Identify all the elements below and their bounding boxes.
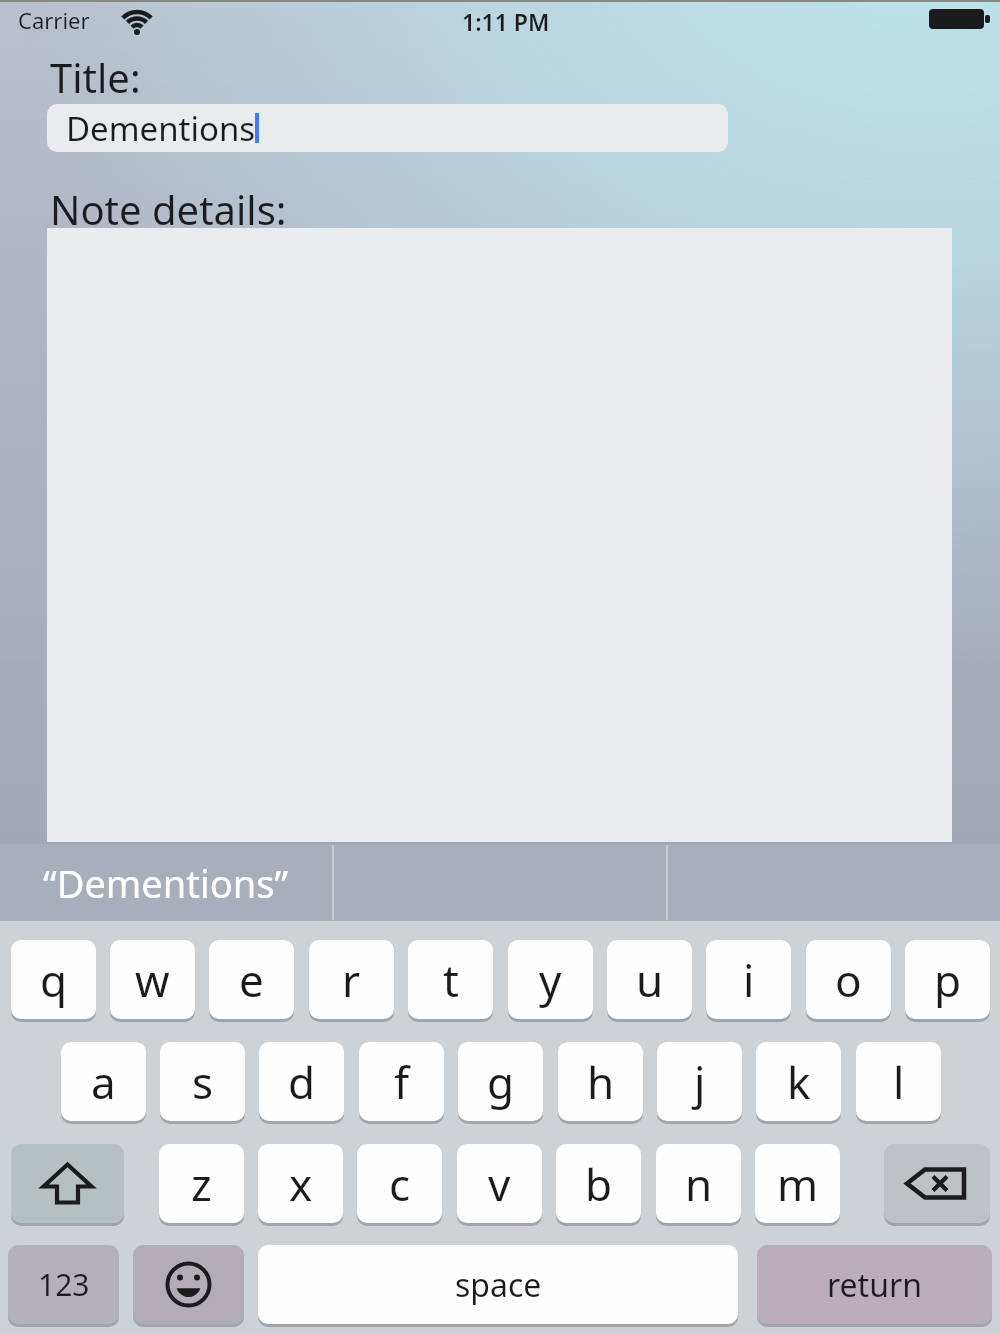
staticText: “Dementions”: [43, 857, 289, 909]
staticText: e: [239, 950, 264, 1010]
button[interactable]: h: [558, 1042, 643, 1121]
button[interactable]: g: [458, 1042, 543, 1121]
button[interactable]: r: [309, 940, 394, 1019]
button[interactable]: i: [706, 940, 791, 1019]
button[interactable]: Note details:: [50, 182, 410, 230]
staticText: y: [539, 950, 562, 1010]
button[interactable]: n: [656, 1144, 741, 1223]
staticText: i: [743, 950, 755, 1010]
button[interactable]: “Dementions”: [0, 844, 332, 921]
button[interactable]: o: [806, 940, 891, 1019]
button[interactable]: 1:11 PM: [406, 6, 606, 34]
button[interactable]: space: [258, 1245, 738, 1324]
staticText: l: [893, 1052, 905, 1112]
button[interactable]: [884, 1144, 990, 1223]
button[interactable]: z: [159, 1144, 244, 1223]
staticText: 1:11 PM: [462, 6, 550, 34]
button[interactable]: [133, 1245, 244, 1324]
staticText: 123: [38, 1264, 90, 1305]
staticText: s: [192, 1052, 214, 1112]
button[interactable]: [11, 1144, 124, 1223]
button[interactable]: j: [657, 1042, 742, 1121]
staticText: m: [777, 1154, 819, 1214]
button[interactable]: l: [856, 1042, 941, 1121]
staticText: k: [787, 1052, 811, 1112]
staticText: x: [289, 1154, 313, 1214]
button[interactable]: e: [209, 940, 294, 1019]
button[interactable]: return: [757, 1245, 992, 1324]
button[interactable]: m: [755, 1144, 840, 1223]
button[interactable]: Dementions: [47, 104, 728, 152]
button[interactable]: v: [457, 1144, 542, 1223]
button[interactable]: a: [61, 1042, 146, 1121]
staticText: w: [135, 950, 170, 1010]
staticText: p: [934, 950, 962, 1010]
staticText: Carrier: [18, 5, 90, 35]
button[interactable]: s: [160, 1042, 245, 1121]
staticText: q: [40, 950, 68, 1010]
staticText: Note details:: [50, 182, 287, 230]
button[interactable]: k: [756, 1042, 841, 1121]
button[interactable]: u: [607, 940, 692, 1019]
staticText: Dementions: [66, 106, 256, 151]
staticText: Title:: [50, 50, 141, 98]
button[interactable]: p: [905, 940, 990, 1019]
staticText: r: [342, 950, 361, 1010]
staticText: v: [488, 1154, 511, 1214]
staticText: j: [694, 1052, 706, 1112]
staticText: b: [585, 1154, 613, 1214]
button[interactable]: b: [556, 1144, 641, 1223]
staticText: h: [587, 1052, 615, 1112]
button[interactable]: c: [357, 1144, 442, 1223]
staticText: a: [91, 1052, 116, 1112]
staticText: z: [191, 1154, 212, 1214]
button[interactable]: Title:: [50, 50, 310, 98]
button[interactable]: Carrier: [18, 5, 118, 35]
button[interactable]: x: [258, 1144, 343, 1223]
button[interactable]: d: [259, 1042, 344, 1121]
button[interactable]: t: [408, 940, 493, 1019]
staticText: g: [487, 1052, 515, 1112]
button[interactable]: q: [11, 940, 96, 1019]
staticText: return: [827, 1263, 922, 1307]
button[interactable]: f: [359, 1042, 444, 1121]
button[interactable]: 123: [8, 1245, 119, 1324]
staticText: t: [443, 950, 459, 1010]
staticText: f: [394, 1052, 410, 1112]
staticText: n: [685, 1154, 713, 1214]
button[interactable]: w: [110, 940, 195, 1019]
staticText: d: [288, 1052, 316, 1112]
staticText: space: [455, 1263, 542, 1307]
staticText: u: [636, 950, 664, 1010]
button[interactable]: y: [508, 940, 593, 1019]
staticText: c: [389, 1154, 411, 1214]
staticText: o: [835, 950, 862, 1010]
